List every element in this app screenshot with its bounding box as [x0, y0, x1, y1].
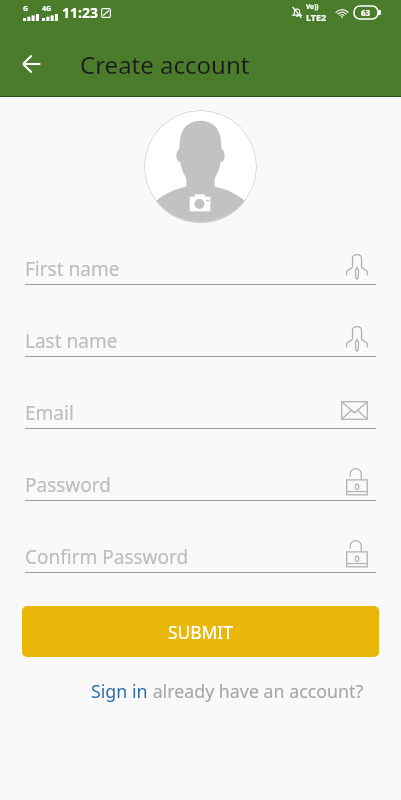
button[interactable]: SUBMIT: [22, 606, 379, 657]
staticText: Confirm Password: [25, 544, 346, 570]
staticText: Last name: [25, 328, 346, 354]
button[interactable]: Back: [3, 36, 59, 92]
staticText: SUBMIT: [168, 620, 233, 644]
staticText: 11:23: [62, 3, 98, 22]
button[interactable]: Sign in: [91, 679, 148, 703]
staticText: 4G: [42, 4, 52, 14]
staticText: First name: [25, 256, 346, 282]
button[interactable]: Change profile photo: [144, 110, 257, 223]
staticText: Create account: [80, 48, 250, 81]
staticText: 63: [361, 7, 371, 18]
staticText: already have an account?: [148, 679, 364, 703]
staticText: LTE2: [306, 11, 327, 23]
staticText: Vo)): [306, 2, 319, 11]
staticText: Email: [25, 400, 341, 426]
staticText: G: [23, 4, 29, 14]
staticText: Password: [25, 472, 346, 498]
